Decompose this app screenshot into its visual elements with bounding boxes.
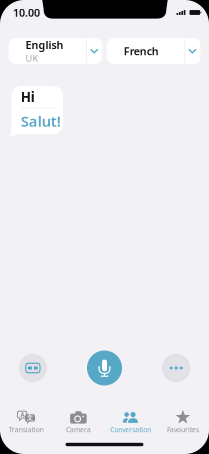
- button[interactable]: Hi: [11, 86, 63, 134]
- staticText: Translation: [9, 425, 44, 434]
- button[interactable]: Keyboard: [19, 354, 47, 382]
- button[interactable]: English: [9, 38, 102, 64]
- button[interactable]: French: [107, 38, 200, 64]
- staticText: 10.00: [13, 5, 40, 20]
- button[interactable]: Conversation: [104, 409, 157, 435]
- staticText: Favourites: [167, 425, 199, 434]
- button[interactable]: 文: [0, 409, 52, 435]
- button[interactable]: More options: [162, 354, 190, 382]
- staticText: A: [20, 410, 24, 419]
- button[interactable]: Record: [87, 350, 122, 385]
- staticText: English: [26, 38, 64, 52]
- button[interactable]: Favourites: [157, 409, 209, 435]
- staticText: 文: [26, 414, 33, 422]
- button[interactable]: Camera: [52, 409, 104, 435]
- staticText: Conversation: [110, 425, 151, 434]
- staticText: French: [124, 44, 159, 58]
- staticText: Hi: [21, 88, 35, 106]
- staticText: UK: [26, 52, 39, 64]
- staticText: Camera: [66, 425, 91, 434]
- staticText: Salut!: [21, 111, 61, 131]
